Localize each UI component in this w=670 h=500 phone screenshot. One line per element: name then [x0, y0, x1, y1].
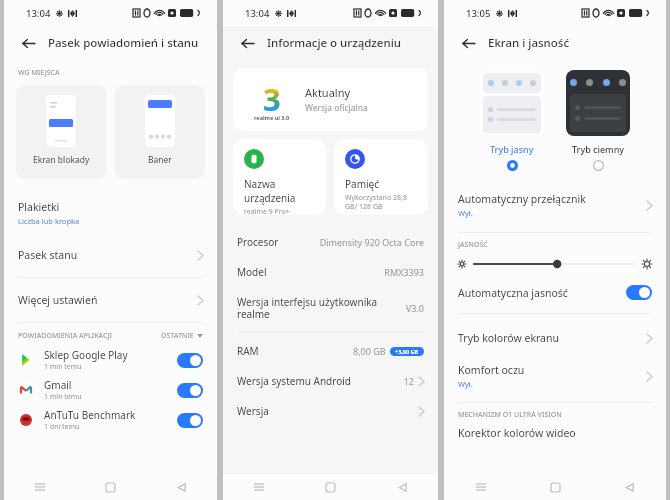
- staticText: 1 min temu: [44, 362, 82, 372]
- button[interactable]: 3: [233, 68, 428, 131]
- button[interactable]: Model: [223, 257, 438, 287]
- button[interactable]: RAM: [223, 336, 438, 366]
- staticText: RMX3393: [384, 266, 424, 278]
- button[interactable]: Recents: [444, 474, 518, 500]
- staticText: Wył.: [458, 208, 473, 218]
- staticText: Informacje o urządzeniu: [267, 35, 401, 51]
- staticText: Tryb kolorów ekranu: [458, 331, 559, 345]
- staticText: POWIADOMIENIA APLIKACJI: [18, 331, 112, 341]
- staticText: OSTATNIE: [161, 331, 194, 341]
- staticText: 1 dni temu: [44, 422, 80, 432]
- staticText: Ekran i jasność: [488, 35, 570, 51]
- staticText: 13:04: [26, 7, 51, 20]
- staticText: V3.0: [405, 302, 424, 314]
- button[interactable]: Home: [518, 474, 592, 500]
- staticText: Więcej ustawień: [18, 293, 98, 307]
- button[interactable]: [474, 258, 634, 270]
- button[interactable]: Nazwa urządzenia: [233, 139, 326, 215]
- staticText: Wykorzystano 28,8 GB/ 128 GB: [345, 193, 420, 211]
- staticText: 8,00 GB: [353, 345, 386, 357]
- button[interactable]: Procesor: [223, 227, 438, 257]
- button[interactable]: Tryb ciemny: [566, 70, 630, 171]
- button[interactable]: [626, 285, 652, 300]
- staticText: Pamięć: [345, 177, 380, 191]
- staticText: Tryb ciemny: [572, 143, 625, 155]
- staticText: Sklep Google Play: [44, 348, 128, 362]
- staticText: Korektor kolorów wideo: [458, 426, 576, 440]
- staticText: Model: [237, 265, 374, 279]
- staticText: RAM: [237, 344, 353, 358]
- button[interactable]: AnTuTu Benchmark: [4, 405, 217, 435]
- button[interactable]: [177, 353, 203, 368]
- button[interactable]: Wersja systemu Android: [223, 366, 438, 396]
- staticText: 3: [263, 78, 281, 112]
- button[interactable]: Ekran blokady: [16, 85, 106, 179]
- staticText: Nazwa urządzenia: [244, 177, 318, 205]
- button[interactable]: Back: [146, 474, 217, 500]
- button[interactable]: [593, 160, 604, 171]
- staticText: Wersja interfejsu użytkownika realme: [237, 295, 395, 321]
- staticText: Plakietki: [18, 200, 60, 214]
- button[interactable]: [177, 413, 203, 428]
- button[interactable]: Back: [366, 474, 438, 500]
- staticText: realme ui 3.0: [254, 114, 290, 121]
- staticText: 13:05: [466, 7, 491, 20]
- staticText: Pasek powiadomień i stanu: [48, 35, 199, 51]
- staticText: Dimensity 920 Octa Core: [319, 236, 424, 248]
- staticText: Procesor: [237, 235, 309, 249]
- button[interactable]: Wersja interfejsu użytkownika realme: [223, 287, 438, 329]
- button[interactable]: Back: [18, 33, 38, 53]
- staticText: Baner: [148, 154, 172, 166]
- button[interactable]: Plakietki: [4, 191, 217, 235]
- button[interactable]: [507, 160, 518, 171]
- staticText: Ekran blokady: [33, 154, 90, 166]
- button[interactable]: Home: [294, 474, 366, 500]
- button[interactable]: Automatyczna jasność: [444, 278, 666, 307]
- staticText: WG MIEJSCA: [18, 68, 60, 78]
- button[interactable]: Sklep Google Play: [4, 345, 217, 375]
- staticText: Liczba lub kropka: [18, 216, 80, 226]
- staticText: 13:04: [245, 7, 270, 20]
- button[interactable]: Wersja: [223, 396, 438, 426]
- button[interactable]: Więcej ustawień: [4, 284, 217, 316]
- button[interactable]: Back: [592, 474, 666, 500]
- staticText: Wersja: [237, 404, 404, 418]
- button[interactable]: Recents: [223, 474, 294, 500]
- button[interactable]: Baner: [114, 85, 205, 179]
- staticText: JASNOŚĆ: [458, 240, 488, 250]
- staticText: 1 min temu: [44, 392, 82, 402]
- button[interactable]: Pasek stanu: [4, 239, 217, 271]
- button[interactable]: Tryb kolorów ekranu: [444, 322, 666, 354]
- button[interactable]: Automatyczny przełącznik: [444, 183, 666, 227]
- staticText: Tryb jasny: [490, 143, 534, 155]
- button[interactable]: Recents: [4, 474, 75, 500]
- staticText: AnTuTu Benchmark: [44, 408, 136, 422]
- staticText: Automatyczny przełącznik: [458, 192, 586, 206]
- button[interactable]: Gmail: [4, 375, 217, 405]
- staticText: Pasek stanu: [18, 248, 78, 262]
- staticText: Aktualny: [305, 85, 351, 100]
- staticText: Komfort oczu: [458, 363, 525, 377]
- staticText: Wersja systemu Android: [237, 374, 393, 388]
- staticText: Wył.: [458, 379, 473, 389]
- staticText: Wersja oficjalna: [305, 102, 368, 114]
- staticText: Automatyczna jasność: [458, 286, 626, 300]
- staticText: +3,00 GB: [395, 348, 419, 355]
- button[interactable]: Komfort oczu: [444, 354, 666, 398]
- button[interactable]: Tryb jasny: [480, 70, 544, 171]
- button[interactable]: [177, 383, 203, 398]
- button[interactable]: Back: [458, 33, 478, 53]
- button[interactable]: Home: [75, 474, 146, 500]
- staticText: realme 9 Pro+: [244, 207, 290, 215]
- button[interactable]: Back: [237, 33, 257, 53]
- staticText: 12: [403, 375, 414, 387]
- staticText: MECHANIZM O1 ULTRA VISION: [458, 410, 562, 420]
- button[interactable]: OSTATNIE: [161, 331, 203, 341]
- button[interactable]: Pamięć: [334, 139, 428, 215]
- staticText: Gmail: [44, 378, 72, 392]
